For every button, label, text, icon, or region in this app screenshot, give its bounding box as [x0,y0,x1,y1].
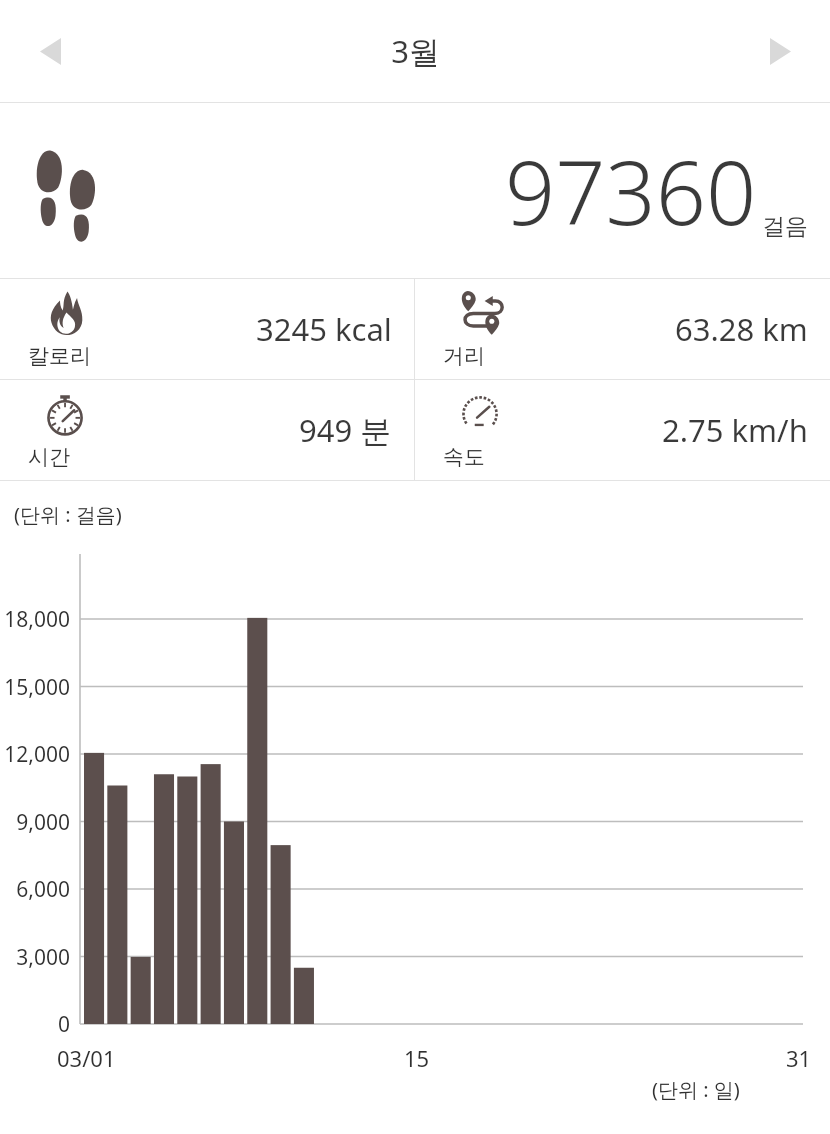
staticText: 949 분 [299,409,392,451]
button[interactable]: 거리 [415,279,830,379]
staticText: 31 [786,1043,812,1073]
staticText: 속도 [443,444,485,470]
staticText: 0 [0,1010,70,1039]
staticText: 3월 [391,30,440,72]
staticText: 2.75 km/h [662,409,808,451]
staticText: 시간 [28,444,70,470]
button[interactable]: Next month [754,25,806,77]
staticText: 18,000 [0,605,70,634]
staticText: (단위 : 일) [652,1076,740,1103]
button[interactable]: 칼로리 [0,279,414,379]
staticText: 63.28 km [675,308,808,350]
staticText: 칼로리 [28,343,91,369]
button[interactable]: 시간 [0,380,414,480]
staticText: 15 [404,1043,430,1073]
staticText: (단위 : 걸음) [14,501,122,528]
staticText: 03/01 [57,1043,116,1073]
staticText: 97360 [505,131,757,251]
button[interactable]: 속도 [415,380,830,480]
staticText: 6,000 [0,875,70,904]
button[interactable]: Previous month [24,25,76,77]
staticText: 9,000 [0,808,70,837]
staticText: 거리 [443,343,485,369]
staticText: 3,000 [0,943,70,972]
staticText: 12,000 [0,740,70,769]
staticText: 걸음 [762,212,808,241]
staticText: 3245 kcal [256,308,392,350]
staticText: 15,000 [0,673,70,702]
button[interactable]: 97360 [0,103,830,278]
